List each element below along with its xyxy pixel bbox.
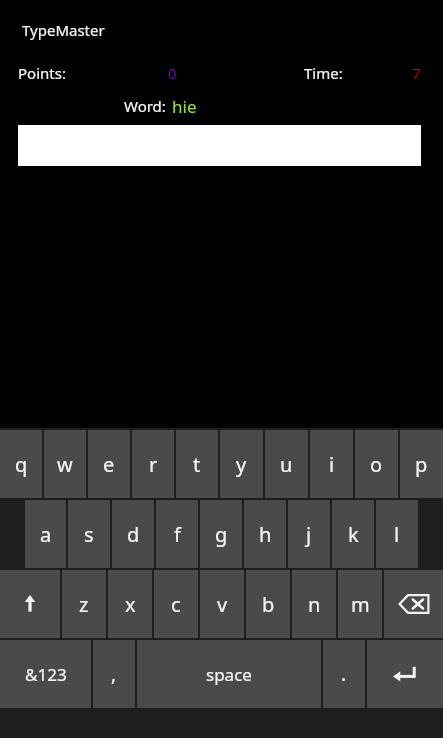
button[interactable]: c <box>154 570 198 638</box>
staticText: h <box>259 521 272 548</box>
staticText: q <box>15 451 28 478</box>
button[interactable]: Backspace <box>384 570 443 638</box>
staticText: w <box>57 451 73 478</box>
staticText: v <box>217 591 228 618</box>
staticText: Points: <box>18 63 66 83</box>
staticText: Word: <box>124 96 166 116</box>
staticText: c <box>171 591 181 618</box>
staticText: p <box>415 451 428 478</box>
button[interactable]: o <box>355 430 398 498</box>
staticText: j <box>306 521 312 548</box>
button[interactable]: x <box>108 570 152 638</box>
staticText: i <box>329 451 335 478</box>
button[interactable]: u <box>265 430 308 498</box>
button[interactable]: y <box>220 430 263 498</box>
button[interactable]: s <box>68 500 110 568</box>
staticText: e <box>103 451 115 478</box>
staticText: z <box>79 591 89 618</box>
staticText: 7 <box>412 63 421 83</box>
button[interactable]: e <box>88 430 130 498</box>
button[interactable]: Shift <box>0 570 60 638</box>
staticText: Time: <box>304 63 343 83</box>
button[interactable]: a <box>25 500 66 568</box>
staticText: f <box>174 521 181 548</box>
button[interactable]: g <box>200 500 242 568</box>
button[interactable]: l <box>376 500 418 568</box>
button[interactable]: . <box>323 640 365 708</box>
staticText: x <box>125 591 136 618</box>
staticText: a <box>40 521 52 548</box>
staticText: n <box>308 591 321 618</box>
button[interactable]: j <box>288 500 330 568</box>
button[interactable]: q <box>0 430 42 498</box>
button[interactable]: z <box>62 570 106 638</box>
button[interactable]: n <box>292 570 336 638</box>
button[interactable]: p <box>400 430 443 498</box>
button[interactable]: b <box>246 570 290 638</box>
button[interactable]: t <box>176 430 218 498</box>
staticText: d <box>127 521 140 548</box>
staticText: b <box>262 591 275 618</box>
staticText: k <box>348 521 359 548</box>
staticText: , <box>111 661 117 687</box>
staticText: s <box>84 521 94 548</box>
staticText: o <box>370 451 383 478</box>
button[interactable]: m <box>338 570 382 638</box>
button[interactable]: r <box>132 430 174 498</box>
staticText: l <box>394 521 400 548</box>
staticText: y <box>236 451 247 478</box>
button[interactable]: i <box>310 430 353 498</box>
staticText: space <box>206 663 252 686</box>
staticText: m <box>351 591 370 618</box>
staticText: 0 <box>168 63 177 83</box>
button[interactable]: w <box>44 430 86 498</box>
staticText: g <box>215 521 228 548</box>
staticText: TypeMaster <box>22 20 105 40</box>
button[interactable]: f <box>156 500 198 568</box>
staticText: hie <box>172 95 197 118</box>
button[interactable]: v <box>200 570 244 638</box>
button[interactable]: d <box>112 500 154 568</box>
staticText: r <box>149 451 158 478</box>
button[interactable]: space <box>137 640 321 708</box>
staticText: &123 <box>25 663 67 686</box>
staticText: t <box>193 451 201 478</box>
button[interactable]: Enter <box>367 640 443 708</box>
staticText: . <box>341 661 347 687</box>
button[interactable]: h <box>244 500 286 568</box>
button[interactable]: &123 <box>0 640 91 708</box>
button[interactable]: k <box>332 500 374 568</box>
button[interactable]: , <box>93 640 135 708</box>
staticText: u <box>280 451 293 478</box>
